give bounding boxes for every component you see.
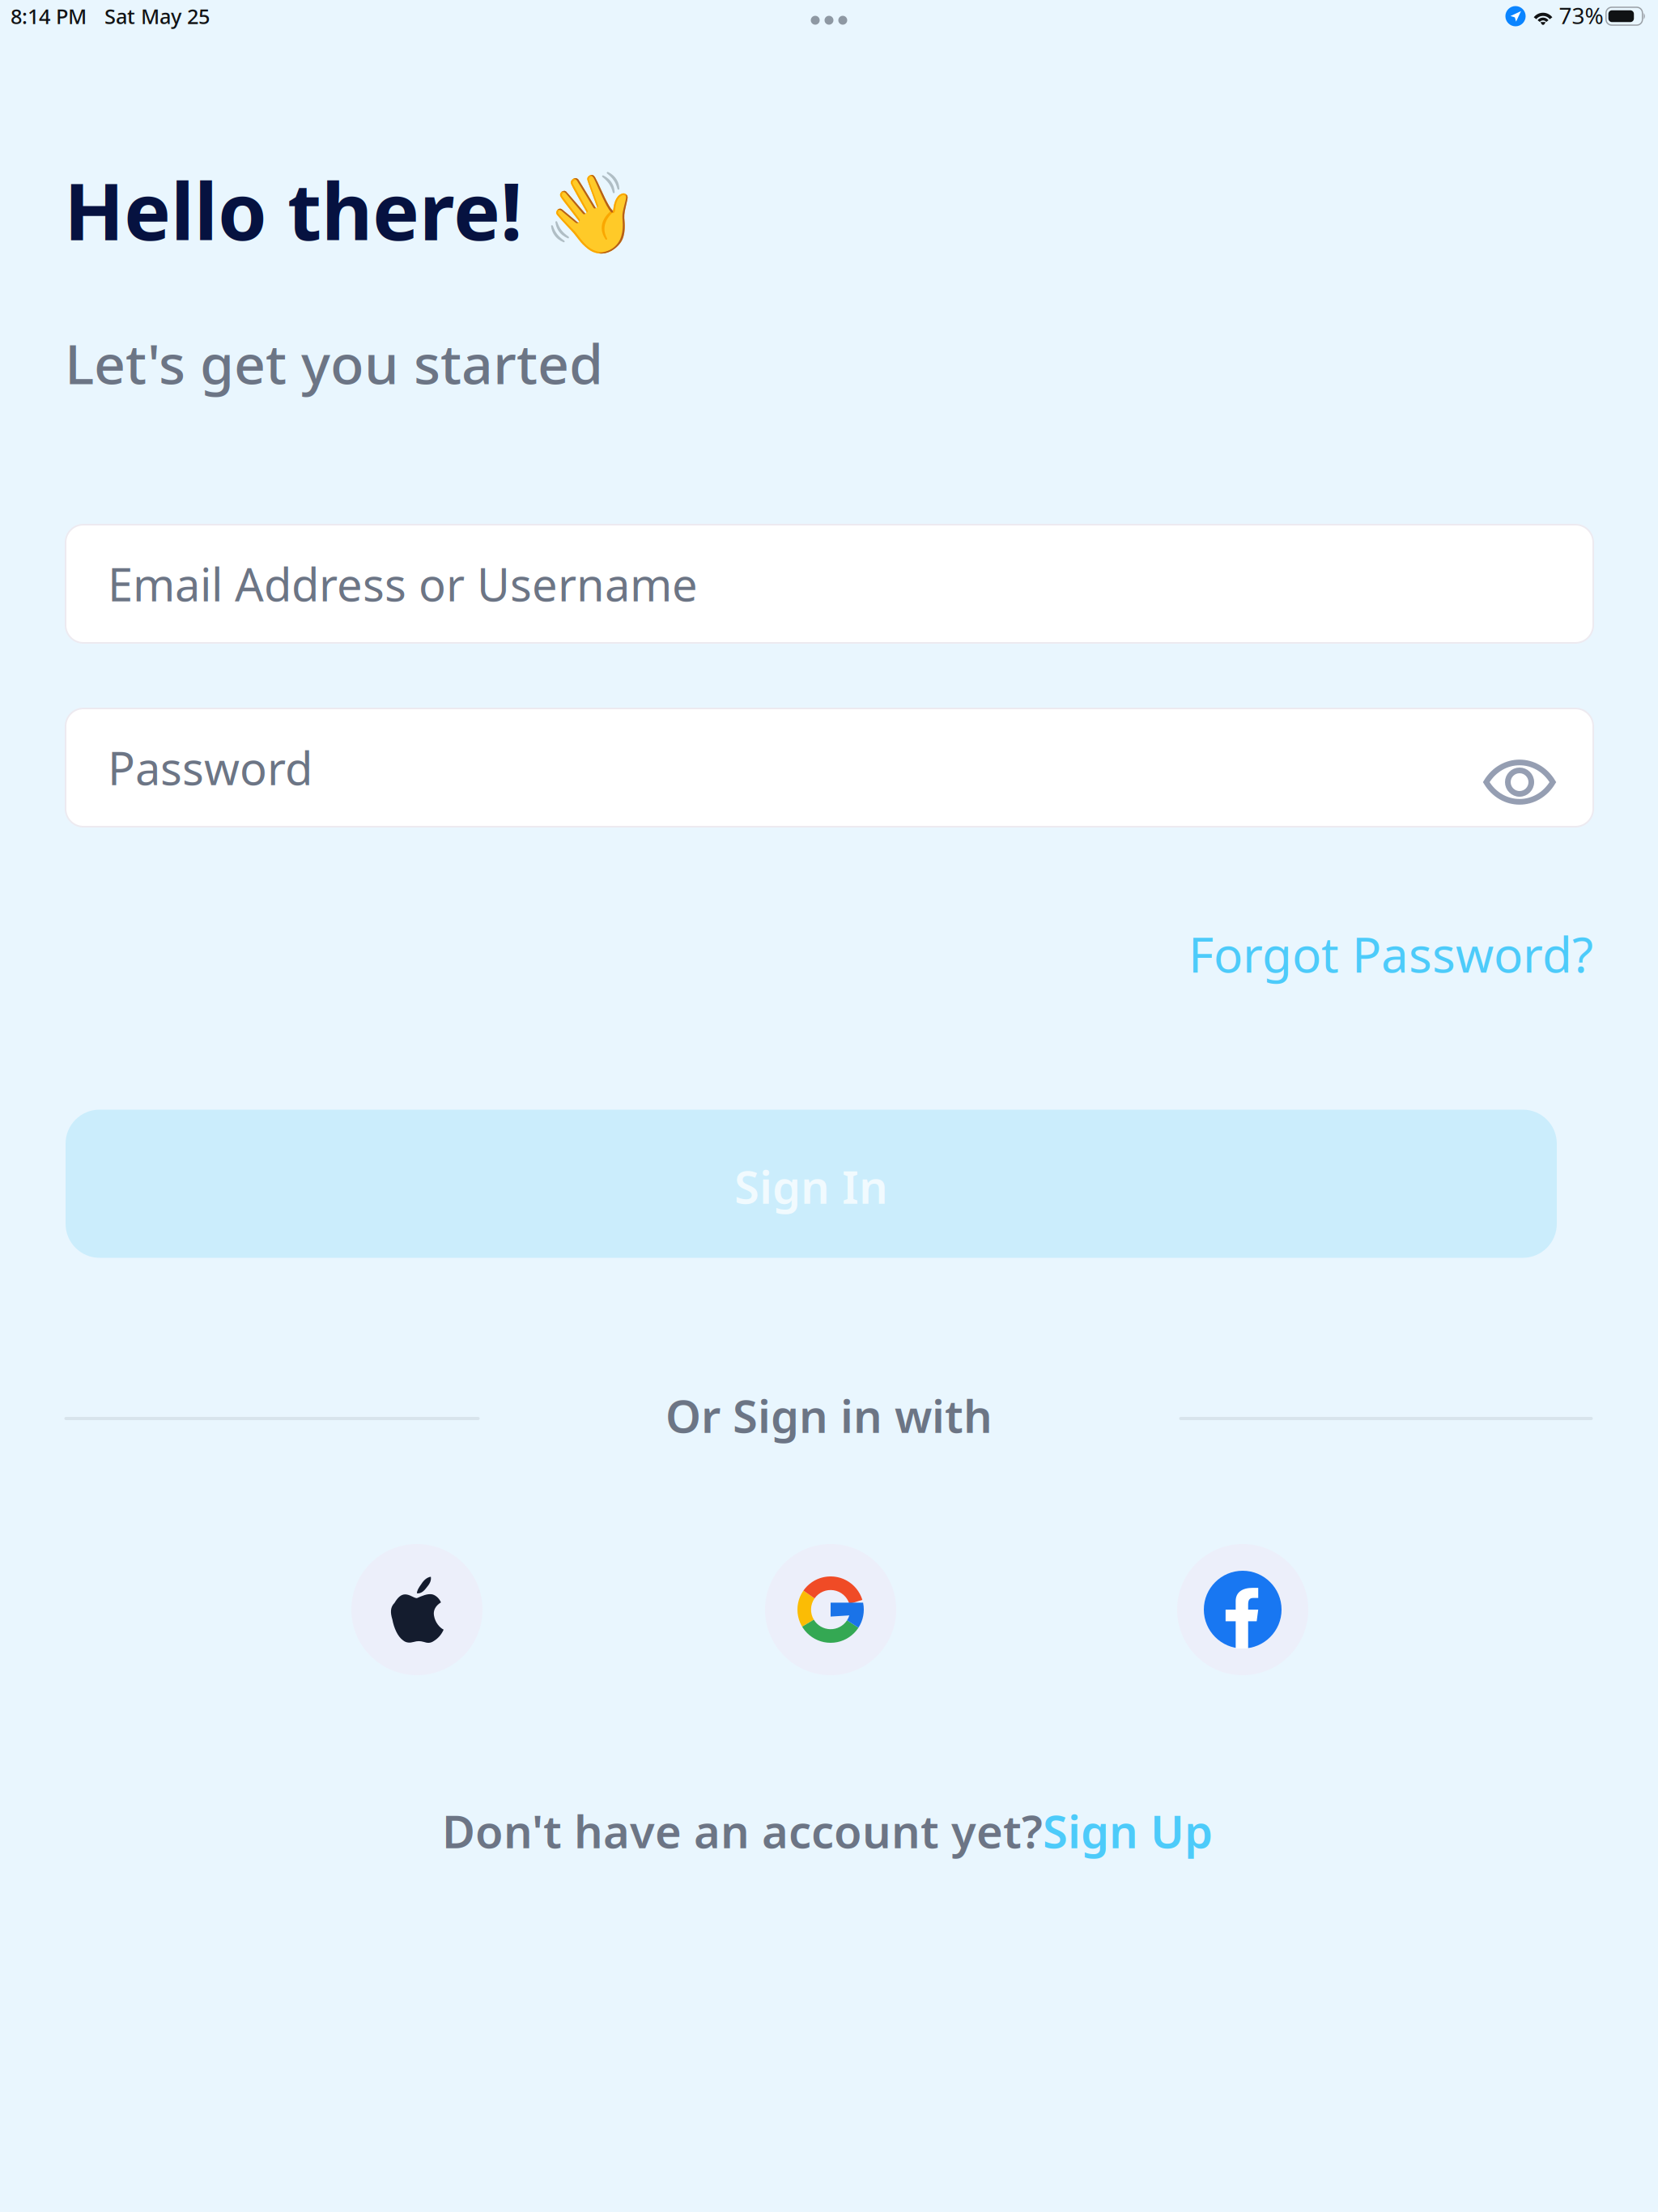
staticText: Sat May 25 xyxy=(104,3,210,30)
staticText: Forgot Password? xyxy=(1188,922,1593,986)
button[interactable]: Sign In xyxy=(66,1110,1557,1258)
staticText: Password xyxy=(108,737,312,798)
staticText: Hello there! 👋 xyxy=(64,157,640,262)
button[interactable]: Forgot Password? xyxy=(1027,921,1593,986)
staticText: Or Sign in with xyxy=(665,1385,993,1445)
staticText: Let's get you started xyxy=(65,326,603,399)
button[interactable]: Sign Up xyxy=(1043,1801,1213,1861)
button[interactable]: Sign in with Apple xyxy=(351,1544,483,1675)
button[interactable]: Email Address or Username xyxy=(66,525,1593,643)
button[interactable]: Password xyxy=(66,708,1593,827)
staticText: Sign Up xyxy=(1043,1801,1213,1861)
staticText: 8:14 PM xyxy=(11,3,87,30)
staticText: Don't have an account yet? xyxy=(442,1801,1043,1861)
button[interactable]: Show password xyxy=(1470,708,1569,827)
staticText: Email Address or Username xyxy=(108,554,698,614)
button[interactable]: Sign in with Facebook xyxy=(1177,1544,1308,1675)
staticText: 73% xyxy=(1559,0,1603,30)
staticText: Sign In xyxy=(734,1156,888,1216)
button[interactable]: Sign in with Google xyxy=(765,1544,896,1675)
